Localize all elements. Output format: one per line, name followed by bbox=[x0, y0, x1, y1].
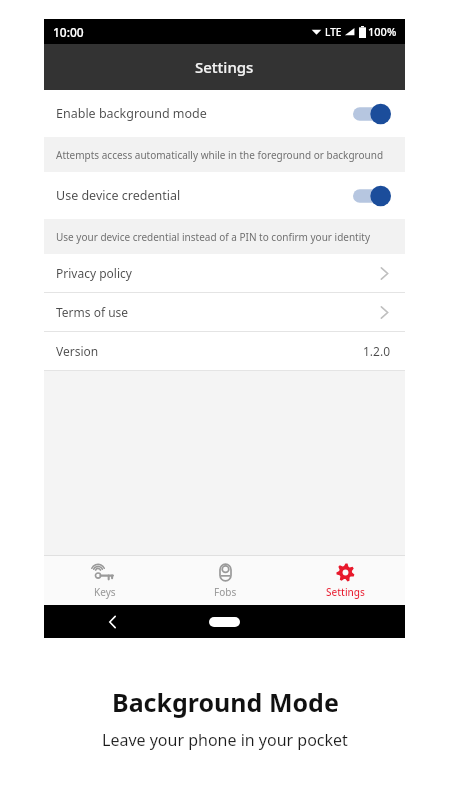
staticText: Fobs bbox=[214, 585, 237, 599]
button[interactable]: Fobs bbox=[165, 556, 285, 605]
staticText: 1.2.0 bbox=[363, 343, 391, 359]
button[interactable]: Toggle bbox=[353, 185, 391, 207]
button[interactable]: Use device credential bbox=[44, 172, 405, 219]
staticText: Settings bbox=[195, 57, 254, 77]
staticText: LTE bbox=[325, 25, 342, 39]
button[interactable]: Keys bbox=[44, 556, 165, 605]
staticText: Settings bbox=[326, 585, 365, 599]
button[interactable]: Toggle bbox=[353, 103, 391, 125]
staticText: Attempts access automatically while in t… bbox=[56, 148, 384, 162]
button[interactable]: Terms of use bbox=[44, 293, 405, 331]
staticText: Privacy policy bbox=[56, 265, 380, 281]
staticText: Terms of use bbox=[56, 304, 380, 320]
button[interactable]: Privacy policy bbox=[44, 254, 405, 292]
staticText: Keys bbox=[94, 585, 116, 599]
button[interactable]: Home bbox=[209, 617, 240, 627]
staticText: Use device credential bbox=[56, 187, 353, 204]
staticText: 10:00 bbox=[53, 24, 84, 40]
staticText: Enable background mode bbox=[56, 105, 353, 122]
staticText: 100% bbox=[368, 24, 397, 39]
staticText: Use your device credential instead of a … bbox=[56, 230, 371, 244]
button[interactable]: Enable background mode bbox=[44, 90, 405, 137]
staticText: Background Mode bbox=[112, 685, 339, 719]
button[interactable]: Settings bbox=[285, 556, 405, 605]
button[interactable]: Back bbox=[102, 612, 122, 632]
button[interactable]: Version bbox=[44, 332, 405, 370]
staticText: Leave your phone in your pocket bbox=[102, 729, 348, 751]
staticText: Version bbox=[56, 343, 363, 359]
